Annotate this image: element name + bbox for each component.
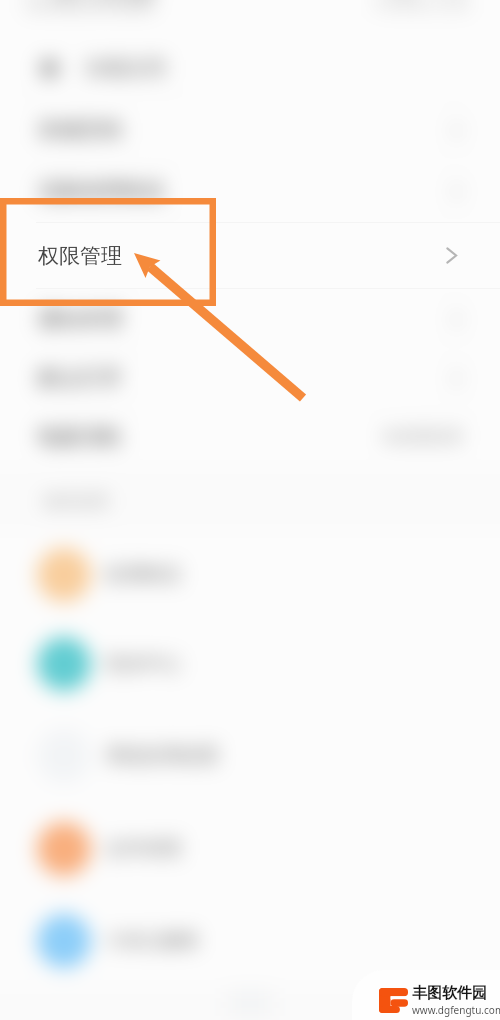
staticText: 通知管理 bbox=[38, 306, 122, 332]
button[interactable]: 系统应用设置 bbox=[0, 709, 500, 803]
button[interactable]: 电量消耗 bbox=[0, 407, 500, 467]
button[interactable]: 权限管理 bbox=[0, 222, 500, 289]
button[interactable]: 默认打开 bbox=[0, 349, 500, 407]
staticText: 文件管理 bbox=[105, 837, 181, 861]
staticText: 权限管理 bbox=[38, 243, 122, 269]
staticText: www.dgfengtu.com bbox=[412, 1003, 500, 1017]
staticText: 系统应用设置 bbox=[105, 744, 219, 768]
staticText: 丰图软件园 bbox=[412, 984, 487, 1003]
button[interactable]: 通知管理 bbox=[0, 289, 500, 349]
button[interactable]: 安全中心 bbox=[0, 619, 500, 709]
button[interactable]: 卸载应用 bbox=[0, 42, 500, 94]
button[interactable]: 存储空间 bbox=[0, 100, 500, 160]
button[interactable]: 权限管理 bbox=[0, 222, 500, 289]
staticText: 应用信息管理通知 bbox=[26, 0, 154, 15]
button[interactable]: 流量使用情况 bbox=[0, 160, 500, 222]
staticText: 小米云服务 bbox=[105, 929, 200, 953]
other: Highlight annotation pointing at 权限管理 bbox=[0, 0, 500, 1020]
staticText: 电量消耗 bbox=[38, 424, 122, 450]
button[interactable]: 文件管理 bbox=[0, 803, 500, 895]
button[interactable]: 应用商店 bbox=[0, 531, 500, 619]
staticText: 应用商店 bbox=[105, 563, 181, 587]
staticText: 卸载应用 bbox=[86, 56, 166, 81]
staticText: 流量使用情况 bbox=[38, 178, 164, 204]
staticText: 权限管理 bbox=[38, 243, 122, 269]
staticText: 默认打开 bbox=[38, 365, 122, 391]
staticText: 安全中心 bbox=[105, 652, 181, 676]
staticText: 存储空间 bbox=[38, 117, 122, 143]
button[interactable]: 丰图软件园 www.dgfengtu.com bbox=[379, 984, 500, 1017]
button[interactable]: 小米云服务 bbox=[0, 895, 500, 987]
